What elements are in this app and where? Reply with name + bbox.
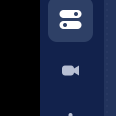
button[interactable]: Video — [48, 48, 93, 93]
button[interactable]: Microphone — [48, 99, 93, 116]
button[interactable]: Switches — [48, 0, 93, 42]
